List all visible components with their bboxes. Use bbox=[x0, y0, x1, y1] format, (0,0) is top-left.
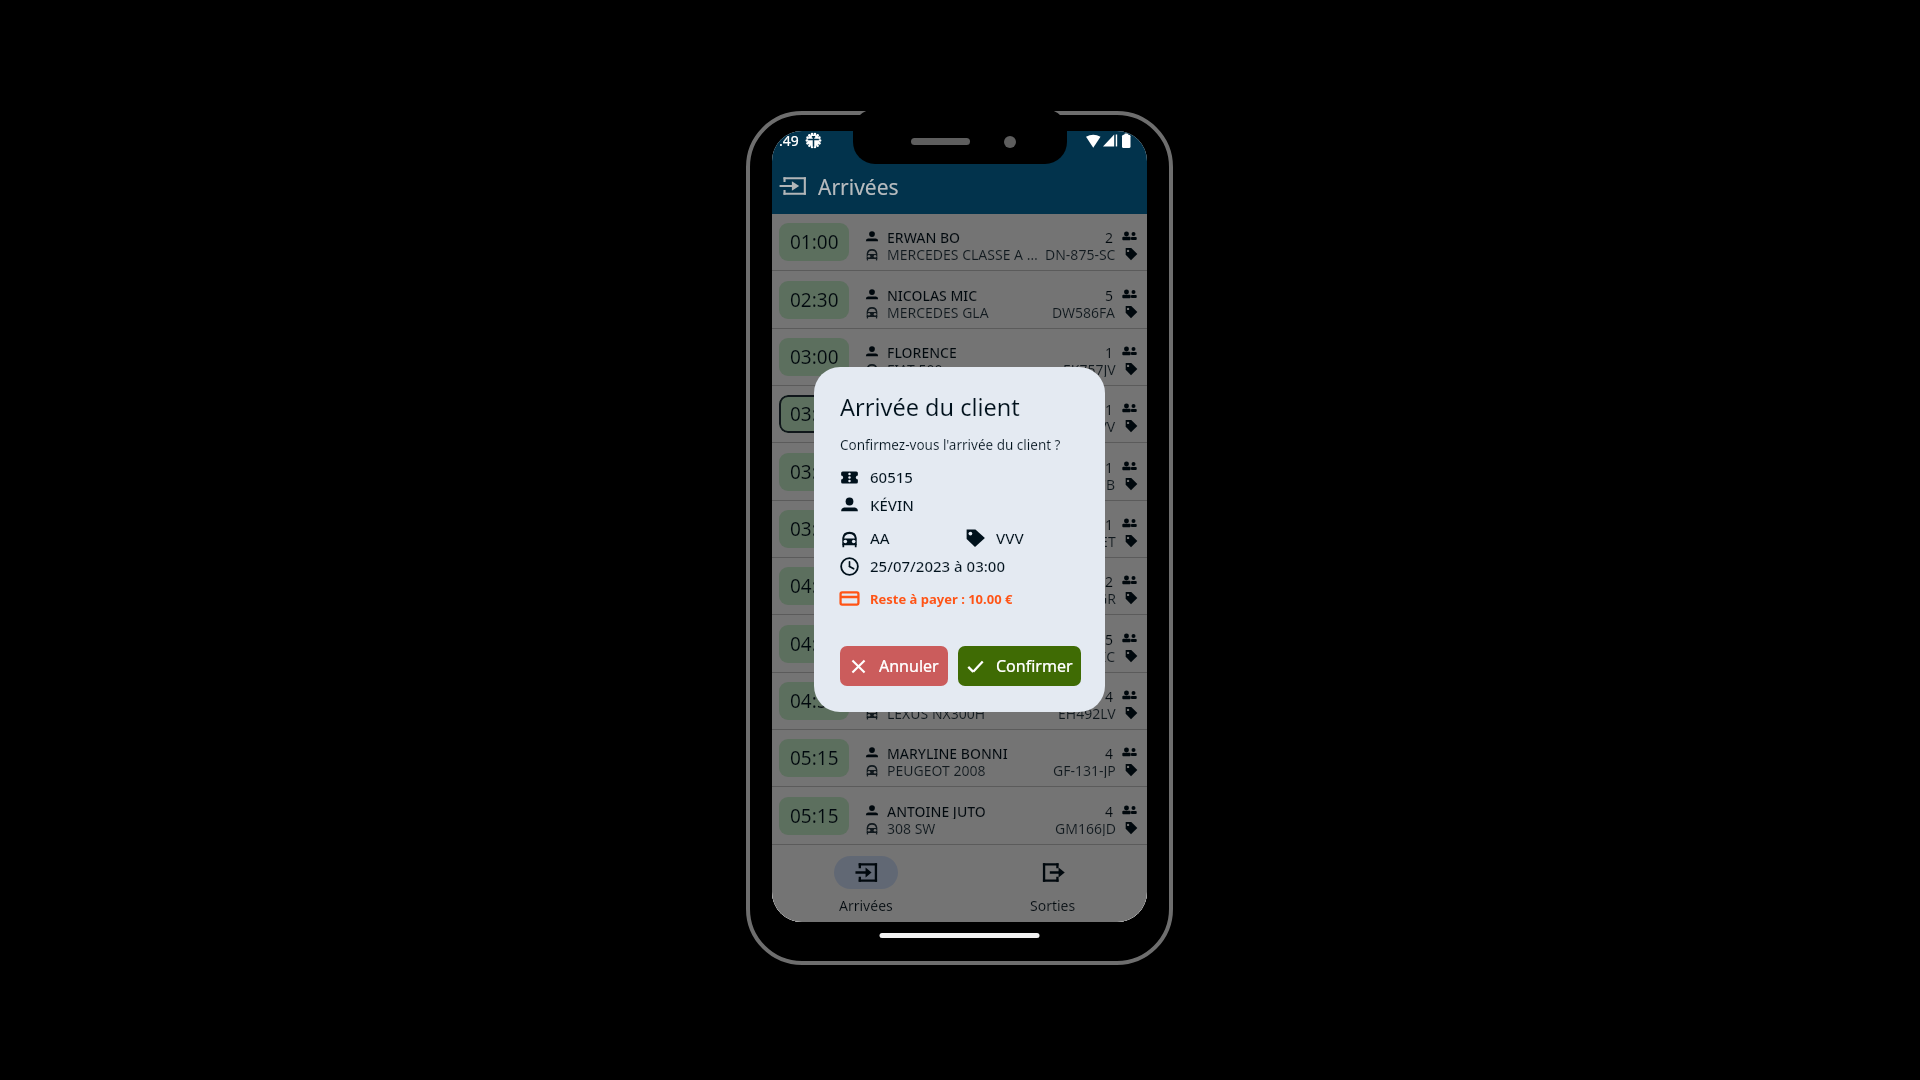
staticText: 25/07/2023 à 03:00 bbox=[870, 556, 1005, 576]
staticText: EH492LV bbox=[1058, 704, 1116, 721]
staticText: LEXUS NX300H bbox=[887, 704, 1052, 721]
staticText: 1 bbox=[1105, 515, 1114, 532]
staticText: Annuler bbox=[879, 655, 939, 677]
staticText: 308 SW bbox=[887, 819, 1049, 836]
staticText: FLORENCE bbox=[887, 343, 1099, 360]
staticText: 4 bbox=[1105, 744, 1114, 761]
button[interactable]: Sorties bbox=[959, 846, 1147, 915]
staticText: EK757JV bbox=[1063, 360, 1116, 377]
staticText: Arrivée du client bbox=[840, 391, 1020, 421]
staticText: 4 bbox=[1105, 687, 1114, 704]
button[interactable]: Arrivées bbox=[772, 164, 814, 206]
staticText: 03:30 bbox=[790, 516, 839, 542]
staticText: 60515 bbox=[870, 467, 913, 487]
staticText: 03:00 bbox=[790, 401, 839, 427]
staticText: BMW X1 bbox=[887, 647, 1042, 664]
staticText: EF-789-GR bbox=[1049, 589, 1116, 606]
button[interactable]: 02:30 bbox=[772, 271, 1147, 329]
staticText: GM166JD bbox=[1055, 819, 1116, 836]
button[interactable]: 03:00 bbox=[772, 386, 1147, 443]
staticText: AA bbox=[870, 528, 890, 548]
staticText: NICOLAS MIC bbox=[887, 286, 1099, 303]
button[interactable]: 04:00 bbox=[772, 558, 1147, 615]
staticText: LUC MARTIN bbox=[887, 630, 1099, 647]
staticText: 02:30 bbox=[790, 287, 839, 313]
staticText: 04:50 bbox=[790, 688, 839, 714]
button[interactable]: 05:15 bbox=[772, 787, 1147, 845]
staticText: FIAT 500 bbox=[887, 360, 1057, 377]
staticText: ERWAN BO bbox=[887, 228, 1099, 245]
button[interactable]: 03:30 bbox=[772, 501, 1147, 558]
staticText: Confirmer bbox=[996, 655, 1073, 677]
staticText: 05:15 bbox=[790, 803, 839, 829]
button[interactable]: 03:15 bbox=[772, 443, 1147, 501]
button[interactable]: 03:00 bbox=[772, 329, 1147, 386]
staticText: MERCEDES CLASSE A 2... bbox=[887, 245, 1039, 262]
staticText: Reste à payer : 10.00 € bbox=[870, 590, 1013, 608]
staticText: MARIE LOU bbox=[887, 515, 1099, 532]
staticText: VVV bbox=[996, 528, 1024, 548]
button[interactable]: 05:15 bbox=[772, 730, 1147, 787]
staticText: Confirmez-vous l'arrivée du client ? bbox=[840, 436, 1061, 454]
button[interactable]: 04:50 bbox=[772, 673, 1147, 730]
staticText: KÉVIN bbox=[887, 400, 1099, 417]
button[interactable]: Confirmer bbox=[958, 646, 1081, 686]
staticText: 04:30 bbox=[790, 631, 839, 657]
button[interactable]: Annuler bbox=[840, 646, 948, 686]
staticText: 2 bbox=[1105, 228, 1114, 245]
staticText: ANTOINE JUTO bbox=[887, 802, 1099, 819]
staticText: Sorties bbox=[1030, 896, 1076, 915]
staticText: 2 bbox=[1105, 572, 1114, 589]
staticText: DN-875-SC bbox=[1045, 245, 1116, 262]
staticText: PEUGEOT 208 bbox=[887, 589, 1043, 606]
staticText: GF-131-JP bbox=[1053, 761, 1116, 778]
staticText: CITROEN C3 bbox=[887, 532, 1042, 549]
staticText: 01:00 bbox=[790, 229, 839, 255]
staticText: Arrivées bbox=[839, 896, 893, 915]
staticText: Arrivées bbox=[818, 173, 899, 202]
staticText: 4 bbox=[1105, 802, 1114, 819]
staticText: MERCEDES GLA bbox=[887, 303, 1046, 320]
staticText: 1 bbox=[1105, 400, 1114, 417]
button[interactable]: 01:00 bbox=[772, 214, 1147, 271]
staticText: KÉVIN bbox=[870, 495, 915, 515]
staticText: 04:00 bbox=[790, 573, 839, 599]
staticText: 5 bbox=[1105, 286, 1114, 303]
staticText: 05:15 bbox=[790, 745, 839, 771]
staticText: DW586FA bbox=[1052, 303, 1116, 320]
staticText: 1 bbox=[1105, 343, 1114, 360]
button[interactable]: Arrivées bbox=[772, 846, 959, 915]
staticText: CD-456-ET bbox=[1048, 532, 1116, 549]
staticText: 5 bbox=[1105, 630, 1114, 647]
staticText: RENAULT CLIO bbox=[887, 475, 1040, 492]
staticText: VVV bbox=[1090, 417, 1116, 434]
staticText: 03:15 bbox=[790, 459, 839, 485]
staticText: JEAN MAR bbox=[887, 458, 1099, 475]
button[interactable]: 04:30 bbox=[772, 615, 1147, 673]
staticText: PEUGEOT 2008 bbox=[887, 761, 1047, 778]
staticText: MARYLINE BONNI bbox=[887, 744, 1099, 761]
staticText: GH-012-IC bbox=[1048, 647, 1116, 664]
staticText: .49 bbox=[779, 131, 799, 150]
staticText: 1 bbox=[1105, 458, 1114, 475]
staticText: 03:00 bbox=[790, 344, 839, 370]
staticText: AB-123-CB bbox=[1046, 475, 1116, 492]
